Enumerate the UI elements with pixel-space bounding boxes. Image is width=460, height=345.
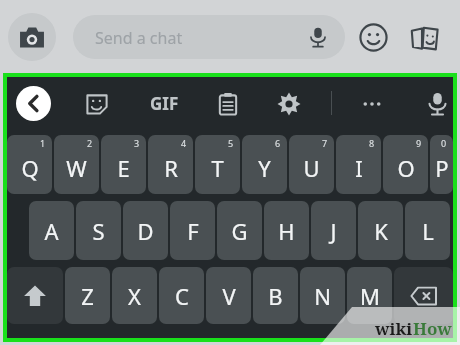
staticText: E	[117, 153, 130, 183]
staticText: L	[422, 216, 434, 246]
button[interactable]: Send a chat	[73, 15, 345, 59]
button[interactable]: C	[159, 267, 204, 324]
button[interactable]: O	[383, 135, 428, 194]
staticText: U	[303, 153, 320, 183]
button[interactable]: L	[405, 201, 450, 260]
staticText: N	[314, 281, 331, 311]
button[interactable]: Stickers	[357, 21, 389, 53]
staticText: H	[278, 216, 295, 246]
staticText: P	[435, 153, 449, 183]
staticText: I	[355, 153, 363, 183]
staticText: O	[397, 153, 415, 183]
staticText: K	[374, 216, 388, 246]
staticText: 1	[40, 137, 46, 149]
staticText: C	[175, 281, 189, 311]
button[interactable]: H	[264, 201, 309, 260]
staticText: T	[211, 153, 224, 183]
button[interactable]: I	[336, 135, 381, 194]
button[interactable]: X	[112, 267, 157, 324]
staticText: B	[268, 281, 283, 311]
staticText: Send a chat	[95, 27, 183, 49]
button[interactable]: Voice input	[421, 87, 453, 119]
staticText: 9	[416, 137, 422, 149]
staticText: 8	[369, 137, 375, 149]
button[interactable]: More options	[357, 89, 387, 119]
button[interactable]: S	[76, 201, 121, 260]
staticText: J	[330, 216, 337, 246]
staticText: D	[137, 216, 154, 246]
button[interactable]: K	[358, 201, 403, 260]
staticText: 4	[181, 137, 187, 149]
button[interactable]: clipboard	[212, 88, 243, 119]
staticText: 6	[275, 137, 281, 149]
button[interactable]: M	[347, 267, 392, 324]
button[interactable]: J	[311, 201, 356, 260]
staticText: How	[413, 317, 452, 340]
button[interactable]: A	[29, 201, 74, 260]
button[interactable]: Backspace	[394, 267, 453, 324]
staticText: R	[164, 153, 178, 183]
staticText: 7	[322, 137, 328, 149]
button[interactable]: N	[300, 267, 345, 324]
button[interactable]: V	[206, 267, 251, 324]
button[interactable]: B	[253, 267, 298, 324]
button[interactable]: Voice message	[305, 24, 331, 50]
button[interactable]: D	[123, 201, 168, 260]
staticText: 0	[441, 137, 447, 149]
staticText: W	[66, 153, 87, 183]
staticText: X	[128, 281, 141, 311]
staticText: G	[231, 216, 248, 246]
button[interactable]: U	[289, 135, 334, 194]
button[interactable]: GIF	[141, 91, 187, 115]
staticText: 3	[134, 137, 140, 149]
staticText: M	[360, 281, 380, 311]
button[interactable]: G	[217, 201, 262, 260]
staticText: 2	[87, 137, 93, 149]
button[interactable]: Camera	[8, 13, 56, 61]
button[interactable]: Q	[7, 135, 52, 194]
button[interactable]: sticker	[81, 88, 112, 119]
button[interactable]: W	[54, 135, 99, 194]
button[interactable]: Z	[65, 267, 110, 324]
button[interactable]: Y	[242, 135, 287, 194]
staticText: 5	[228, 137, 234, 149]
button[interactable]: E	[101, 135, 146, 194]
staticText: Z	[81, 281, 94, 311]
staticText: S	[92, 216, 105, 246]
staticText: GIF	[150, 92, 179, 115]
button[interactable]: settings	[273, 88, 304, 119]
staticText: F	[187, 216, 199, 246]
staticText: A	[44, 216, 59, 246]
button[interactable]: R	[148, 135, 193, 194]
staticText: wiki	[375, 317, 413, 340]
button[interactable]: F	[170, 201, 215, 260]
button[interactable]: P	[430, 135, 453, 194]
staticText: V	[222, 281, 236, 311]
button[interactable]: T	[195, 135, 240, 194]
button[interactable]: Back	[16, 86, 51, 121]
button[interactable]: Shift	[7, 267, 63, 324]
button[interactable]: Cameos	[408, 21, 442, 55]
staticText: Q	[21, 153, 39, 183]
staticText: Y	[258, 153, 271, 183]
